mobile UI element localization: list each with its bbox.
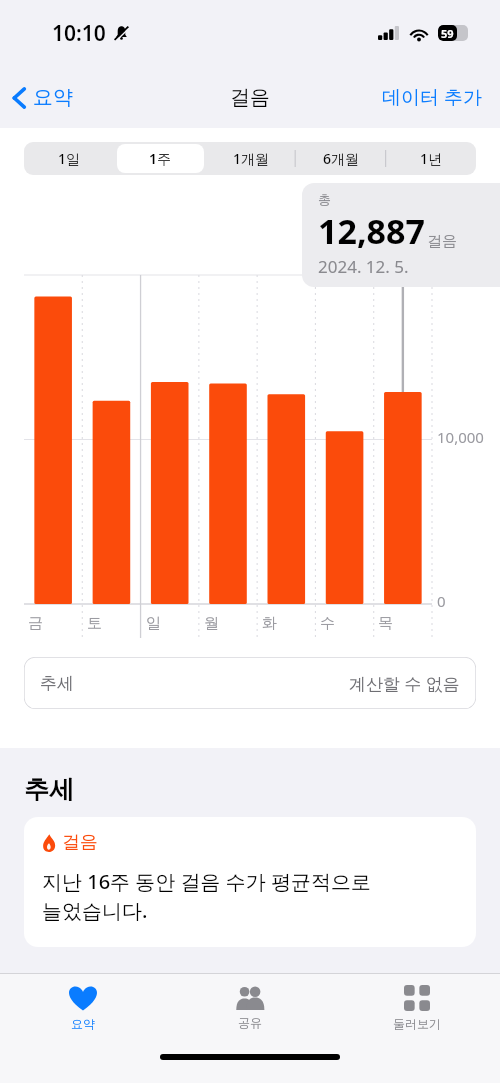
staticText: 6개월 xyxy=(323,149,360,168)
button[interactable]: 걸음 xyxy=(24,817,476,947)
staticText: 총 xyxy=(318,191,331,207)
staticText: 금 xyxy=(28,614,43,633)
button[interactable]: 요약 xyxy=(0,79,81,116)
staticText: 지난 16주 동안 걸음 수가 평균적으로 늘었습니다. xyxy=(42,868,371,924)
staticText: 1개월 xyxy=(233,149,270,168)
staticText: 걸음 xyxy=(62,831,98,854)
button[interactable]: 추세 xyxy=(24,657,476,709)
staticText: 일 xyxy=(146,614,161,633)
staticText: 둘러보기 xyxy=(393,1016,441,1031)
staticText: 10:10 xyxy=(52,19,106,48)
button[interactable]: 데이터 추가 xyxy=(364,76,500,118)
staticText: 걸음 xyxy=(427,232,457,251)
staticText: 추세 xyxy=(24,774,74,805)
staticText: 2024. 12. 5. xyxy=(318,255,409,278)
staticText: 목 xyxy=(378,614,393,633)
staticText: 10,000 xyxy=(437,427,484,447)
staticText: 1주 xyxy=(149,149,172,168)
button[interactable]: 요약 xyxy=(0,974,166,1038)
staticText: 계산할 수 없음 xyxy=(349,672,460,695)
button[interactable]: 공유 xyxy=(166,974,333,1038)
staticText: 12,887 xyxy=(318,208,425,254)
staticText: 공유 xyxy=(238,1015,262,1030)
staticText: 1년 xyxy=(420,149,443,168)
button[interactable]: 1주 xyxy=(115,142,206,175)
staticText: 요약 xyxy=(71,1016,95,1031)
button[interactable]: 1개월 xyxy=(206,142,296,175)
staticText: 데이터 추가 xyxy=(382,84,482,110)
staticText: 화 xyxy=(262,614,277,633)
staticText: 59 xyxy=(441,26,454,41)
staticText: 월 xyxy=(204,614,219,633)
staticText: 토 xyxy=(87,614,102,633)
staticText: 추세 xyxy=(40,673,74,694)
button[interactable]: 둘러보기 xyxy=(333,974,500,1038)
staticText: 걸음 xyxy=(230,85,270,110)
staticText: 0 xyxy=(437,591,446,611)
staticText: 1일 xyxy=(58,149,81,168)
button[interactable]: 1일 xyxy=(24,142,115,175)
staticText: 수 xyxy=(320,614,335,633)
button[interactable]: 1년 xyxy=(386,142,476,175)
staticText: 요약 xyxy=(33,85,73,110)
button[interactable]: 6개월 xyxy=(296,142,386,175)
